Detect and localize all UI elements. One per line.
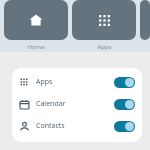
- staticText: Calendar: [36, 99, 66, 109]
- staticText: Apps: [97, 43, 112, 51]
- button[interactable]: Apps: [72, 0, 136, 40]
- button[interactable]: Toggle on: [114, 99, 135, 110]
- button[interactable]: Toggle on: [114, 121, 135, 132]
- staticText: Apps: [36, 77, 53, 87]
- button[interactable]: Apps: [12, 71, 142, 93]
- staticText: Contacts: [36, 121, 65, 131]
- button[interactable]: Calendar: [12, 93, 142, 115]
- staticText: Home: [27, 43, 45, 51]
- button[interactable]: Toggle on: [114, 77, 135, 88]
- button[interactable]: Contacts: [12, 115, 142, 137]
- button[interactable]: Home: [4, 0, 68, 40]
- button[interactable]: Shortcut: [140, 0, 150, 40]
